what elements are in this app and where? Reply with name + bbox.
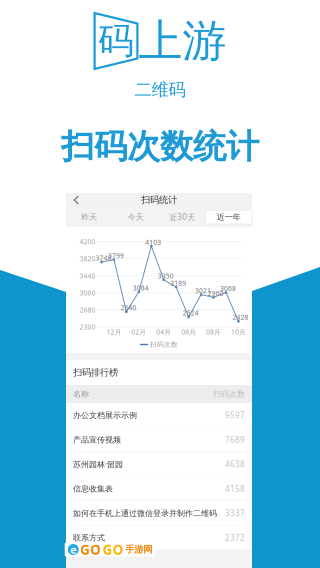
staticText: 4103 [145, 238, 161, 246]
staticText: 3337 [225, 508, 245, 518]
staticText: 扫码次数 [150, 340, 178, 349]
staticText: 4200 [79, 237, 95, 246]
staticText: 3084 [133, 283, 149, 292]
staticText: 3440 [79, 271, 95, 280]
staticText: 近一年 [217, 212, 241, 222]
staticText: 10月 [231, 328, 246, 336]
staticText: 4638 [225, 459, 245, 469]
staticText: e [70, 542, 76, 557]
staticText: 2428 [232, 313, 248, 322]
staticText: 今天 [128, 212, 144, 222]
staticText: GO [80, 541, 101, 558]
staticText: 7689 [225, 434, 245, 445]
staticText: 2524 [183, 308, 199, 317]
staticText: 12月 [106, 328, 121, 336]
button[interactable]: 联系方式 [66, 525, 252, 550]
button[interactable]: 信息收集表 [66, 476, 252, 501]
staticText: 4158 [225, 483, 245, 494]
staticText: 2680 [79, 305, 95, 314]
button[interactable]: 昨天 [66, 210, 112, 224]
button[interactable]: 苏州园林·留园 [66, 452, 252, 476]
staticText: 3068 [220, 284, 236, 293]
button[interactable]: 今天 [112, 210, 159, 224]
staticText: 近30天 [169, 212, 195, 222]
button[interactable]: 如何在手机上通过微信登录并制作二维码 [66, 501, 252, 525]
staticText: 3350 [158, 271, 174, 280]
staticText: 3799 [108, 251, 124, 260]
staticText: 扫码次数 [213, 389, 245, 399]
staticText: 02月 [131, 328, 146, 336]
staticText: 2960 [208, 289, 224, 298]
staticText: 上游 [138, 14, 226, 68]
staticText: 2300 [79, 323, 95, 331]
button[interactable]: Back [73, 195, 80, 204]
staticText: 苏州园林·留园 [73, 459, 123, 469]
staticText: 昨天 [81, 212, 97, 222]
staticText: 产品宣传视频 [73, 435, 121, 445]
staticText: 3189 [170, 279, 186, 288]
staticText: 2372 [225, 532, 245, 543]
staticText: 06月 [181, 328, 196, 336]
button[interactable]: 近30天 [159, 210, 205, 224]
staticText: 2640 [120, 303, 136, 312]
staticText: 扫码统计 [141, 194, 177, 206]
button[interactable]: 办公文档展示示例 [66, 403, 252, 427]
staticText: 08月 [206, 328, 221, 336]
staticText: 手游网 [125, 544, 152, 555]
staticText: 3820 [79, 254, 95, 263]
staticText: 9597 [225, 410, 245, 420]
staticText: 04月 [156, 328, 171, 336]
staticText: 联 [70, 546, 78, 556]
staticText: 名称 [73, 389, 89, 399]
staticText: 扫码次数统计 [61, 126, 259, 167]
staticText: 办公文档展示示例 [73, 410, 137, 420]
button[interactable]: 近一年 [205, 210, 252, 224]
staticText: 扫码排行榜 [73, 367, 118, 378]
button[interactable]: 产品宣传视频 [66, 427, 252, 452]
staticText: 二维码 [134, 79, 185, 100]
staticText: 3021 [195, 286, 211, 295]
staticText: 联系方式 [73, 533, 105, 543]
staticText: 码 [98, 19, 134, 63]
staticText: 信息收集表 [73, 484, 113, 494]
staticText: GO [103, 541, 124, 558]
staticText: 3060 [79, 288, 95, 297]
staticText: 如何在手机上通过微信登录并制作二维码 [73, 508, 217, 518]
staticText: 3748 [95, 254, 111, 262]
